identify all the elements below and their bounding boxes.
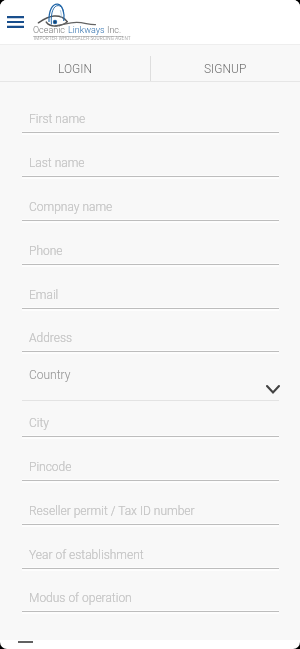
staticText: Oceanic	[33, 25, 68, 36]
button[interactable]: Modus of operation	[22, 579, 279, 614]
button[interactable]: First name	[22, 100, 279, 135]
button[interactable]: Email	[22, 276, 279, 311]
button[interactable]: Last name	[22, 144, 279, 179]
button[interactable]: Phone	[22, 232, 279, 267]
staticText: Last name	[29, 156, 85, 170]
button[interactable]: SIGNUP	[150, 45, 300, 82]
staticText: Linkways	[68, 25, 107, 36]
button[interactable]: Year of establishment	[22, 536, 279, 571]
staticText: City	[29, 416, 50, 430]
button[interactable]: Address	[22, 319, 279, 354]
button[interactable]: Open navigation menu	[2, 11, 28, 33]
staticText: Pincode	[29, 460, 72, 474]
button[interactable]: City	[22, 404, 279, 439]
staticText: Reseller permit / Tax ID number	[29, 504, 195, 518]
staticText: Year of establishment	[29, 548, 144, 562]
button[interactable]: Reseller permit / Tax ID number	[22, 492, 279, 527]
button[interactable]: Pincode	[22, 448, 279, 483]
button[interactable]: Country	[22, 361, 279, 401]
button[interactable]: Compnay name	[22, 188, 279, 223]
staticText: Modus of operation	[29, 591, 132, 605]
staticText: Inc.	[107, 25, 122, 36]
button[interactable]: LOGIN	[0, 45, 150, 82]
staticText: Address	[29, 331, 73, 345]
staticText: Email	[29, 288, 59, 302]
staticText: Country	[29, 368, 71, 382]
staticText: SIGNUP	[204, 62, 247, 76]
staticText: LOGIN	[58, 62, 93, 76]
staticText: IMPORTER·WHOLESALER·SOURCING AGENT	[34, 36, 131, 41]
staticText: Compnay name	[29, 200, 113, 214]
staticText: First name	[29, 112, 86, 126]
staticText: Phone	[29, 244, 63, 258]
